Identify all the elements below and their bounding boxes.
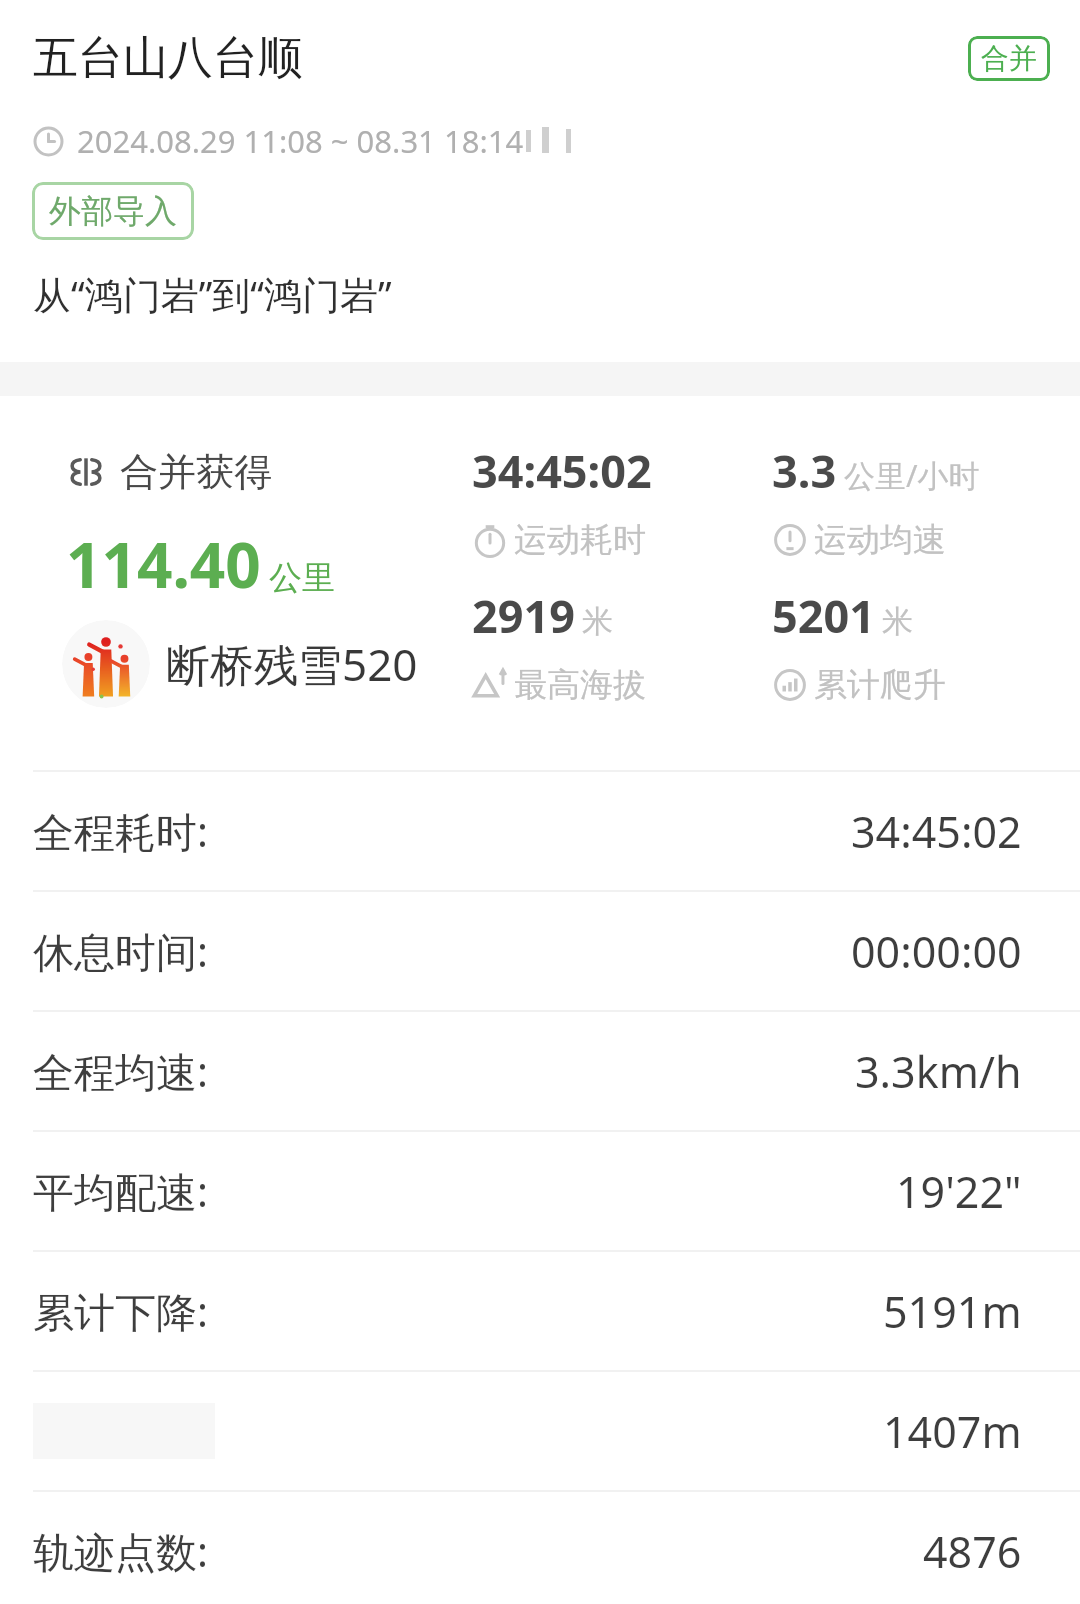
staticText: 合并 bbox=[981, 41, 1037, 76]
staticText: 5201 bbox=[772, 585, 875, 646]
staticText: 五台山八台顺 bbox=[33, 30, 303, 87]
staticText: 4876 bbox=[923, 1522, 1022, 1581]
staticText: 轨迹点数: bbox=[33, 1523, 208, 1579]
staticText: 公里/小时 bbox=[844, 454, 980, 496]
staticText: 全程耗时: bbox=[33, 803, 208, 859]
staticText: 00:00:00 bbox=[851, 922, 1022, 981]
staticText: 34:45:02 bbox=[851, 802, 1022, 861]
staticText: 外部导入 bbox=[49, 191, 177, 231]
staticText: 断桥残雪520 bbox=[166, 634, 418, 694]
button[interactable]: 外部导入 bbox=[32, 182, 194, 240]
staticText: 累计爬升 bbox=[814, 664, 946, 706]
staticText: 平均配速: bbox=[33, 1163, 208, 1219]
staticText: 休息时间: bbox=[33, 923, 208, 979]
staticText: 34:45:02 bbox=[472, 440, 652, 501]
button[interactable]: 全程耗时: bbox=[0, 772, 1080, 890]
button[interactable]: 合并 bbox=[968, 36, 1050, 81]
staticText: 19'22" bbox=[896, 1162, 1022, 1221]
button[interactable]: 1407m bbox=[0, 1372, 1080, 1490]
staticText: 全程均速: bbox=[33, 1043, 208, 1099]
staticText: 累计下降: bbox=[33, 1283, 208, 1339]
button[interactable]: 断桥残雪520 bbox=[62, 620, 418, 708]
staticText: 从“鸿门岩”到“鸿门岩” bbox=[33, 268, 392, 320]
staticText: 2024.08.29 11:08 ~ 08.31 18:14 bbox=[77, 120, 524, 162]
staticText: 5191m bbox=[883, 1282, 1022, 1341]
staticText: 米 bbox=[882, 602, 913, 641]
staticText: 最高海拔 bbox=[514, 664, 646, 706]
staticText: 公里 bbox=[269, 557, 335, 599]
button[interactable]: 累计下降: bbox=[0, 1252, 1080, 1370]
staticText: 运动耗时 bbox=[514, 519, 646, 561]
button[interactable]: 休息时间: bbox=[0, 892, 1080, 1010]
button[interactable]: 轨迹点数: bbox=[0, 1492, 1080, 1604]
staticText: 3.3 bbox=[772, 440, 837, 501]
staticText: 米 bbox=[582, 602, 613, 641]
staticText: 2919 bbox=[472, 585, 575, 646]
button[interactable]: 平均配速: bbox=[0, 1132, 1080, 1250]
button[interactable]: 全程均速: bbox=[0, 1012, 1080, 1130]
other: Merged activities bbox=[68, 454, 104, 490]
staticText: 合并获得 bbox=[120, 448, 272, 496]
staticText: 3.3km/h bbox=[855, 1042, 1022, 1101]
staticText: 1407m bbox=[883, 1402, 1022, 1461]
staticText: 运动均速 bbox=[814, 519, 946, 561]
staticText: 114.40 bbox=[66, 522, 261, 606]
